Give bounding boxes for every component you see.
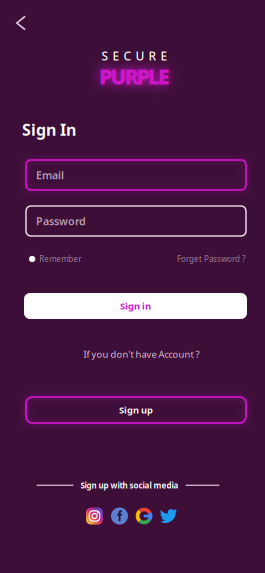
staticText: Password [36, 214, 86, 228]
button[interactable]: Instagram [85, 507, 103, 525]
staticText: Sign up with social media [80, 480, 178, 491]
staticText: Sign in [120, 300, 151, 312]
button[interactable]: Sign up [26, 397, 246, 423]
staticText: Sign up [119, 404, 153, 416]
button[interactable]: Sign in [24, 293, 247, 319]
button[interactable]: Back [6, 8, 36, 38]
staticText: Forget Password ? [177, 254, 245, 264]
button[interactable]: Twitter [159, 507, 177, 525]
staticText: PURPLE [99, 62, 170, 90]
staticText: Sign In [22, 119, 76, 140]
button[interactable]: Google [135, 507, 152, 524]
staticText: SECURE [101, 48, 167, 64]
staticText: Remember [39, 254, 81, 264]
button[interactable]: Facebook [110, 507, 128, 525]
button[interactable]: Forget Password ? [177, 252, 245, 266]
staticText: Email [36, 168, 64, 182]
button[interactable]: Remember [29, 252, 81, 266]
staticText: If you don't have Account ? [83, 348, 199, 360]
